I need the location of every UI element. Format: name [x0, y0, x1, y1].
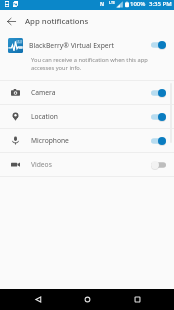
button[interactable]: Back — [26, 289, 50, 310]
staticText: N — [100, 1, 105, 8]
button[interactable]: BlackBerry® Virtual Expert — [0, 34, 174, 56]
staticText: Microphone — [31, 136, 69, 145]
button[interactable]: Home — [75, 289, 99, 310]
button[interactable]: Microphone — [0, 129, 174, 152]
staticText: BlackBerry® Virtual Expert — [29, 41, 114, 50]
staticText: You can receive a notification when this… — [31, 56, 154, 71]
button[interactable]: Location — [0, 105, 174, 128]
staticText: 100% — [130, 0, 146, 8]
button[interactable]: Camera — [0, 81, 174, 104]
button[interactable]: Back — [0, 10, 22, 32]
staticText: 3:35 PM — [149, 0, 172, 8]
staticText: LTE — [109, 0, 116, 4]
button[interactable]: Recents — [125, 289, 149, 310]
staticText: App notifications — [25, 16, 89, 27]
staticText: Camera — [31, 88, 56, 97]
button[interactable]: Videos — [0, 153, 174, 176]
staticText: Location — [31, 112, 58, 121]
staticText: Videos — [31, 160, 52, 169]
